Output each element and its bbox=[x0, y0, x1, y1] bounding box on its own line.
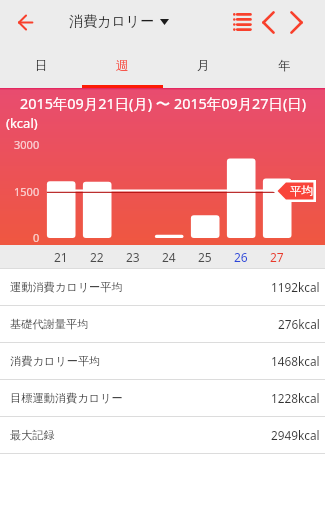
button[interactable]: 消費カロリー平均 bbox=[0, 343, 325, 379]
button[interactable]: 月 bbox=[163, 44, 244, 88]
staticText: 25 bbox=[198, 249, 212, 265]
staticText: 目標運動消費カロリー bbox=[10, 391, 123, 405]
staticText: 23 bbox=[126, 249, 140, 265]
staticText: 22 bbox=[90, 249, 104, 265]
staticText: 最大記録 bbox=[10, 428, 55, 442]
staticText: 1468kcal bbox=[271, 353, 320, 369]
staticText: 消費カロリー平均 bbox=[10, 354, 101, 368]
button[interactable]: Previous week bbox=[254, 0, 282, 44]
staticText: 日 bbox=[35, 58, 48, 74]
staticText: 週 bbox=[116, 58, 129, 74]
staticText: 1228kcal bbox=[271, 390, 320, 406]
staticText: (kcal) bbox=[6, 114, 38, 132]
staticText: 2015年09月21日(月) 〜 2015年09月27日(日) bbox=[20, 94, 306, 114]
staticText: 276kcal bbox=[278, 316, 320, 332]
staticText: 24 bbox=[162, 249, 176, 265]
staticText: 消費カロリー bbox=[69, 13, 154, 31]
button[interactable]: 運動消費カロリー平均 bbox=[0, 269, 325, 305]
button[interactable]: 基礎代謝量平均 bbox=[0, 306, 325, 342]
staticText: 26 bbox=[234, 249, 248, 265]
staticText: 21 bbox=[54, 249, 68, 265]
staticText: 27 bbox=[270, 249, 284, 265]
staticText: 1192kcal bbox=[271, 279, 320, 295]
button[interactable]: 最大記録 bbox=[0, 417, 325, 453]
button[interactable]: Next week bbox=[282, 0, 310, 44]
staticText: 運動消費カロリー平均 bbox=[10, 280, 123, 294]
button[interactable]: 年 bbox=[244, 44, 325, 88]
staticText: 平均 bbox=[290, 184, 313, 198]
staticText: 月 bbox=[197, 58, 210, 74]
staticText: 年 bbox=[278, 58, 291, 74]
staticText: 基礎代謝量平均 bbox=[10, 317, 89, 331]
button[interactable]: List view bbox=[227, 0, 257, 44]
button[interactable]: 日 bbox=[0, 44, 82, 88]
staticText: 0 bbox=[33, 230, 40, 245]
button[interactable]: 週 bbox=[82, 44, 163, 88]
button[interactable]: 消費カロリー bbox=[61, 0, 177, 44]
staticText: 2949kcal bbox=[271, 427, 320, 443]
staticText: 1500 bbox=[14, 184, 40, 199]
button[interactable]: Back bbox=[5, 0, 45, 44]
staticText: 3000 bbox=[14, 137, 40, 152]
button[interactable]: 目標運動消費カロリー bbox=[0, 380, 325, 416]
